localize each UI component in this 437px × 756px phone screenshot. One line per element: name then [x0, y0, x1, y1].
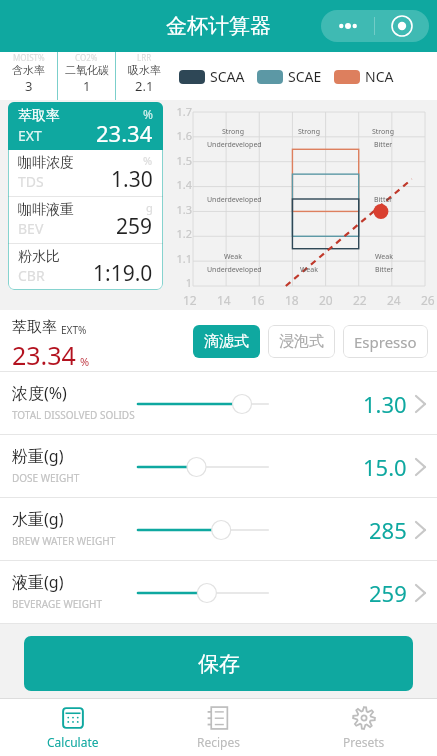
staticText: 萃取率	[18, 107, 60, 125]
staticText: 18	[285, 292, 299, 308]
staticText: 14	[217, 292, 231, 308]
staticText: 1.30	[363, 389, 407, 419]
staticText: 1.4	[170, 177, 192, 192]
button[interactable]: CO2%	[58, 52, 115, 100]
button[interactable]: More options	[321, 10, 374, 42]
staticText: 滴滤式	[204, 332, 249, 351]
staticText: 259	[369, 578, 407, 608]
staticText: Presets	[343, 734, 385, 750]
staticText: 259	[116, 212, 153, 241]
staticText: Strong	[298, 127, 320, 137]
button[interactable]: Espresso	[343, 325, 428, 358]
staticText: 1.2	[170, 226, 192, 241]
staticText: 16	[251, 292, 265, 308]
staticText: DOSE WEIGHT	[12, 471, 80, 485]
staticText: CBR	[18, 266, 45, 285]
staticText: 1	[83, 77, 91, 95]
staticText: 23.34	[12, 338, 76, 372]
button[interactable]: 滴滤式	[193, 325, 260, 358]
staticText: Weak	[224, 252, 242, 262]
staticText: 金杯计算器	[166, 13, 271, 39]
staticText: 萃取率	[12, 318, 57, 337]
staticText: BEV	[18, 219, 44, 238]
staticText: 1.5	[170, 153, 192, 168]
button[interactable]: 浸泡式	[268, 325, 335, 358]
staticText: 水重(g)	[12, 508, 64, 530]
staticText: 浸泡式	[279, 332, 324, 351]
staticText: 20	[319, 292, 333, 308]
staticText: 粉重(g)	[12, 445, 64, 467]
staticText: 15.0	[363, 452, 407, 482]
staticText: 285	[369, 515, 407, 545]
staticText: 23.34	[96, 118, 153, 148]
button[interactable]: Record	[375, 10, 429, 42]
button[interactable]: 保存	[24, 636, 413, 691]
staticText: 26	[421, 292, 435, 308]
staticText: Weak	[300, 265, 318, 275]
button[interactable]: Calculate	[0, 699, 145, 756]
staticText: Bitter	[374, 140, 393, 150]
button[interactable]: LRR	[116, 52, 173, 100]
button[interactable]: 粉重(g)	[0, 435, 437, 498]
staticText: 液重(g)	[12, 571, 64, 593]
staticText: 3	[25, 77, 33, 95]
staticText: Underdeveloped	[207, 140, 262, 150]
staticText: 1.30	[111, 165, 153, 194]
staticText: EXT%	[61, 323, 87, 337]
staticText: NCA	[365, 67, 394, 86]
staticText: 12	[183, 292, 197, 308]
staticText: g	[146, 200, 153, 215]
staticText: %	[143, 106, 153, 122]
staticText: LRR	[137, 52, 152, 63]
staticText: 含水率	[12, 63, 45, 77]
staticText: BREW WATER WEIGHT	[12, 534, 116, 548]
staticText: 22	[353, 292, 367, 308]
staticText: Bitter	[374, 195, 393, 205]
staticText: %	[143, 153, 153, 168]
staticText: TOTAL DISSOLVED SOLIDS	[12, 408, 135, 422]
button[interactable]: 浓度(%)	[0, 372, 437, 435]
staticText: EXT	[18, 126, 42, 145]
button[interactable]: Recipes	[145, 699, 291, 756]
staticText: Recipes	[197, 734, 240, 750]
staticText: Espresso	[354, 332, 417, 352]
staticText: SCAA	[210, 67, 245, 86]
button[interactable]: MOIST%	[0, 52, 57, 100]
staticText: 1:19.0	[93, 259, 153, 288]
staticText: 浓度(%)	[12, 382, 67, 404]
staticText: 咖啡液重	[18, 201, 74, 219]
staticText: 1.1	[170, 251, 192, 266]
staticText: SCAE	[288, 67, 322, 86]
staticText: Underdeveloped	[207, 195, 262, 205]
button[interactable]: 粉水比	[8, 244, 163, 290]
staticText: 二氧化碳	[65, 63, 109, 77]
staticText: Weak	[375, 252, 393, 262]
staticText: Strong	[372, 127, 394, 137]
button[interactable]: 咖啡液重	[8, 197, 163, 243]
staticText: 1.7	[170, 104, 192, 119]
staticText: Underdeveloped	[207, 265, 262, 275]
staticText: 粉水比	[18, 248, 60, 266]
staticText: 2.1	[135, 77, 154, 95]
staticText: BEVERAGE WEIGHT	[12, 597, 102, 611]
button[interactable]: 水重(g)	[0, 498, 437, 561]
staticText: 吸水率	[128, 63, 161, 77]
staticText: Bitter	[375, 265, 394, 275]
staticText: 1.3	[170, 202, 192, 217]
staticText: 咖啡浓度	[18, 154, 74, 172]
staticText: Strong	[222, 127, 244, 137]
staticText: MOIST%	[13, 52, 45, 63]
button[interactable]: 萃取率	[8, 102, 163, 150]
staticText: 保存	[198, 651, 240, 677]
staticText: Calculate	[47, 734, 99, 750]
staticText: TDS	[18, 172, 44, 191]
staticText: %	[80, 354, 90, 369]
staticText: 1	[170, 275, 192, 290]
staticText: 1.6	[170, 128, 192, 143]
button[interactable]: 液重(g)	[0, 561, 437, 624]
button[interactable]: Presets	[291, 699, 437, 756]
staticText: CO2%	[75, 52, 98, 63]
staticText: 24	[387, 292, 401, 308]
button[interactable]: 咖啡浓度	[8, 150, 163, 196]
